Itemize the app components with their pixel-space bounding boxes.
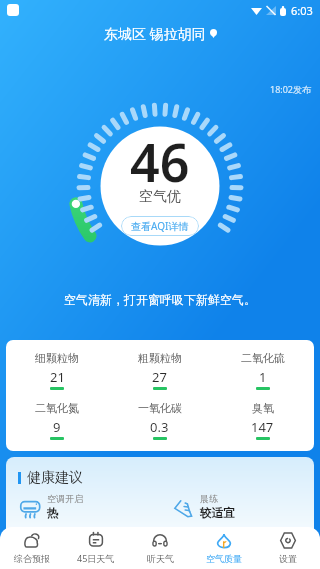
button[interactable]: 综合预报 xyxy=(0,527,64,569)
button[interactable]: 晨练 xyxy=(172,493,235,520)
staticText: 空气清新，打开窗呼吸下新鲜空气。 xyxy=(0,292,320,307)
staticText: 一氧化碳 xyxy=(138,401,182,415)
button[interactable]: 细颗粒物 xyxy=(6,351,108,390)
button[interactable]: 东城区 锡拉胡同 xyxy=(104,24,217,43)
button[interactable]: 臭氧 xyxy=(211,401,314,440)
staticText: 27 xyxy=(152,368,167,386)
staticText: 较适宜 xyxy=(200,506,235,520)
button[interactable]: 设置 xyxy=(256,527,320,569)
button[interactable]: 粗颗粒物 xyxy=(108,351,211,390)
button[interactable]: 一氧化碳 xyxy=(108,401,211,440)
staticText: 1 xyxy=(259,368,267,386)
button[interactable]: 空调开启 xyxy=(19,493,83,520)
staticText: 综合预报 xyxy=(14,553,50,564)
staticText: 9 xyxy=(53,418,61,436)
staticText: 臭氧 xyxy=(252,401,274,415)
button[interactable]: 二氧化硫 xyxy=(211,351,314,390)
staticText: 21 xyxy=(50,368,65,386)
staticText: 空调开启 xyxy=(47,493,83,504)
staticText: 46 xyxy=(130,126,190,197)
button[interactable]: 听天气 xyxy=(128,527,192,569)
button[interactable]: 二氧化氮 xyxy=(6,401,108,440)
staticText: 45日天气 xyxy=(77,552,115,564)
staticText: 设置 xyxy=(279,553,297,564)
staticText: 晨练 xyxy=(200,493,218,504)
staticText: 热 xyxy=(47,506,59,520)
button[interactable]: 45日天气 xyxy=(64,527,128,569)
staticText: 细颗粒物 xyxy=(35,351,79,365)
button[interactable]: 空气质量 xyxy=(192,527,256,569)
staticText: 18:02发布 xyxy=(270,83,312,95)
staticText: 二氧化氮 xyxy=(35,401,79,415)
button[interactable]: 查看AQI详情 xyxy=(121,216,199,236)
staticText: 空气质量 xyxy=(206,553,242,564)
staticText: 东城区 锡拉胡同 xyxy=(104,24,206,43)
staticText: 粗颗粒物 xyxy=(138,351,182,365)
staticText: 查看AQI详情 xyxy=(131,219,189,233)
staticText: 147 xyxy=(251,418,274,436)
staticText: 二氧化硫 xyxy=(241,351,285,365)
staticText: 听天气 xyxy=(147,553,174,564)
staticText: 0.3 xyxy=(150,418,169,436)
staticText: 健康建议 xyxy=(27,469,83,487)
staticText: 空气优 xyxy=(139,188,181,206)
staticText: 6:03 xyxy=(291,3,313,18)
